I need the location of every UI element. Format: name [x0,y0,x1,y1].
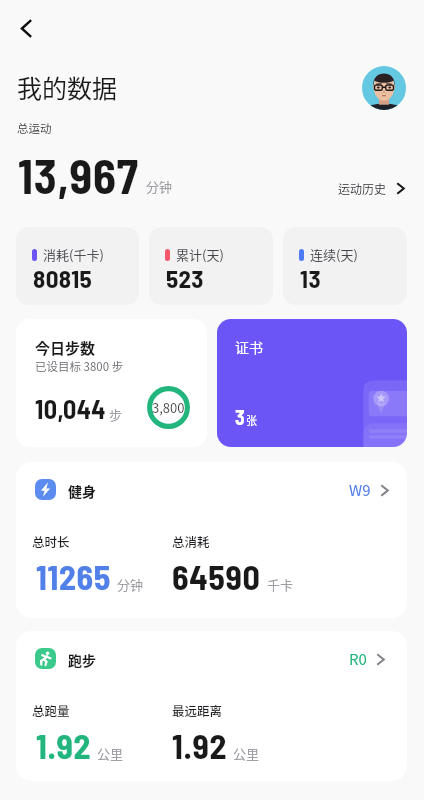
button[interactable]: 今日步数 [16,319,207,447]
staticText: 总运动 [17,120,52,137]
staticText: 523 [166,263,204,293]
staticText: 3,800 [152,398,185,417]
staticText: 连续(天) [310,245,358,264]
staticText: R0 [349,648,367,670]
staticText: 总跑量 [32,701,70,719]
button[interactable]: Profile [362,66,406,110]
button[interactable]: 连续(天) [283,227,407,305]
staticText: 证书 [235,337,263,357]
staticText: 消耗(千卡) [43,245,104,264]
staticText: 累计(天) [176,245,224,264]
button[interactable]: Back [6,8,46,48]
staticText: 分钟 [117,575,144,594]
staticText: 运动历史 [338,180,387,197]
staticText: 3 [235,405,245,429]
staticText: 公里 [97,744,124,763]
staticText: 已设目标 3800 步 [35,358,124,375]
staticText: 80815 [33,263,93,293]
staticText: 健身 [68,481,96,501]
button[interactable]: 证书 [217,319,407,447]
staticText: 总消耗 [172,532,210,550]
staticText: 13 [300,263,321,293]
button[interactable]: 跑步 [16,631,407,781]
staticText: 13,967 [18,147,139,203]
staticText: 分钟 [146,177,173,196]
staticText: 步 [109,405,123,424]
staticText: 今日步数 [35,337,96,359]
staticText: 张 [246,412,257,428]
staticText: 11265 [36,556,111,597]
staticText: 我的数据 [17,69,118,105]
staticText: 1.92 [36,725,91,766]
button[interactable]: 运动历史 [334,175,409,202]
button[interactable]: 健身 [16,462,407,618]
button[interactable]: 消耗(千卡) [16,227,139,305]
staticText: 公里 [233,744,260,763]
staticText: 最远距离 [172,701,223,719]
staticText: 跑步 [68,650,96,670]
staticText: 10,044 [35,393,106,424]
button[interactable]: W9 [345,474,393,506]
button[interactable]: 累计(天) [149,227,273,305]
button[interactable]: R0 [345,643,389,675]
staticText: 总时长 [32,532,70,550]
staticText: 1.92 [172,725,227,766]
staticText: W9 [349,479,371,501]
staticText: 64590 [172,556,261,597]
staticText: 千卡 [267,575,294,594]
